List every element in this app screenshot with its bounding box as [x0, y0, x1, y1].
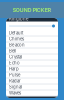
staticText: Bell: [9, 48, 16, 54]
staticText: Signal: [9, 84, 22, 90]
staticText: Crystal: [9, 54, 22, 60]
staticText: SOUND PICKER: [12, 7, 51, 13]
staticText: Beacon: [9, 42, 25, 48]
button[interactable]: Radar: [6, 78, 58, 84]
button[interactable]: Harp: [6, 66, 58, 72]
button[interactable]: Waves: [6, 90, 58, 96]
staticText: Echo: [9, 60, 20, 66]
button[interactable]: Bell: [6, 48, 58, 54]
button[interactable]: Signal: [6, 84, 58, 90]
button[interactable]: Echo: [6, 60, 58, 66]
button[interactable]: Beacon: [6, 42, 58, 48]
button[interactable]: Default: [6, 30, 58, 36]
button[interactable]: Crystal: [6, 54, 58, 60]
staticText: Ringtone: [9, 16, 28, 22]
staticText: Harp: [9, 66, 19, 72]
staticText: Default: [9, 30, 23, 36]
staticText: Waves: [9, 90, 21, 96]
button[interactable]: Pulse: [6, 72, 58, 78]
staticText: Chimes: [9, 36, 24, 42]
staticText: Pulse: [9, 72, 20, 78]
staticText: Radar: [9, 78, 21, 84]
button[interactable]: Chimes: [6, 36, 58, 42]
